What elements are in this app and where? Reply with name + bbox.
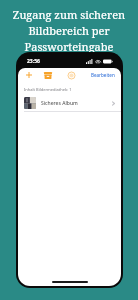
- button[interactable]: Hinzufügen: [24, 70, 34, 80]
- staticText: Inhalt Bildermediathek: 1: [24, 87, 72, 92]
- staticText: Passworteingabe: [4, 39, 134, 54]
- staticText: Bearbeiten: [91, 72, 115, 78]
- staticText: 23:56: [27, 58, 40, 65]
- button[interactable]: Archiv: [42, 70, 53, 81]
- button[interactable]: Sicheres Album: [18, 95, 121, 111]
- staticText: Sicheres Album: [41, 100, 78, 107]
- staticText: Bildbereich per: [4, 23, 134, 38]
- button[interactable]: Bearbeiten: [91, 72, 115, 78]
- button[interactable]: Ansicht: [66, 70, 77, 81]
- staticText: Zugang zum sicheren: [4, 7, 134, 22]
